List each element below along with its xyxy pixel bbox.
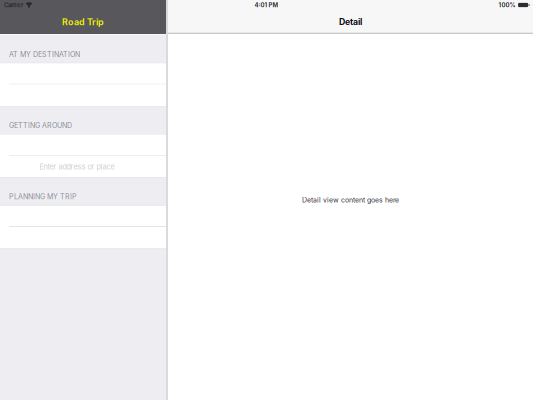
button[interactable]: Planning my trip, item 1 (0, 205, 166, 227)
button[interactable]: At my destination, item 2 (0, 85, 166, 107)
button[interactable]: Planning my trip, item 2 (0, 227, 166, 249)
staticText: Detail (339, 17, 362, 27)
staticText: Enter address or place (39, 162, 114, 171)
staticText: 100% (499, 1, 516, 9)
staticText: GETTING AROUND (9, 121, 72, 130)
staticText: 4:01 PM (254, 1, 278, 9)
button[interactable]: Getting around, item 1 (0, 134, 166, 156)
staticText: Carrier (4, 1, 23, 9)
staticText: Detail view content goes here (302, 196, 399, 204)
staticText: AT MY DESTINATION (9, 50, 80, 59)
staticText: Road Trip (62, 17, 104, 27)
button[interactable]: Enter address or place (0, 156, 166, 178)
staticText: PLANNING MY TRIP (9, 192, 77, 201)
